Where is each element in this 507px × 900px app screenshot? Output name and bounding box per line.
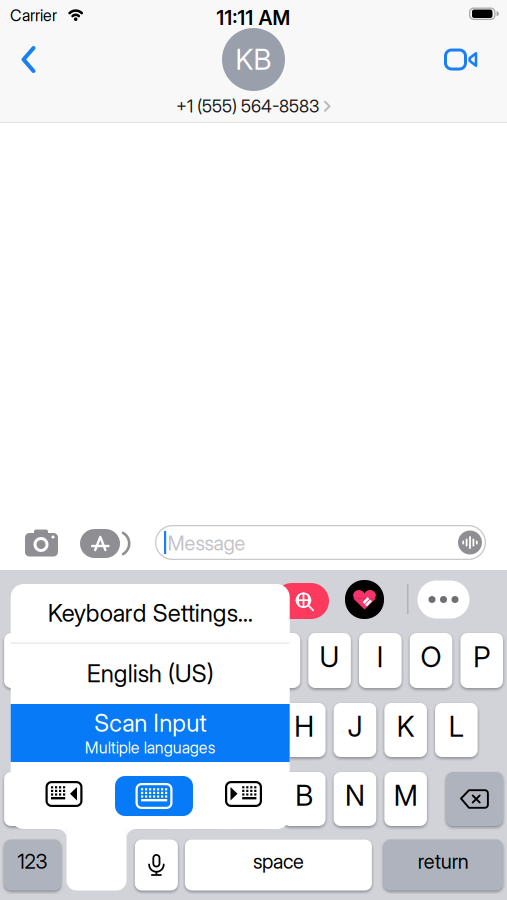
button[interactable]: R [156,633,199,688]
button[interactable]: X [131,772,173,826]
button[interactable]: I [359,633,402,688]
button[interactable]: U [308,633,351,688]
staticText: Carrier [10,6,57,25]
button[interactable]: E [105,633,148,688]
button[interactable]: L [435,703,478,757]
button[interactable]: C [182,772,224,826]
button[interactable]: Camera [25,529,59,557]
staticText: X [143,779,161,812]
staticText: Keyboard Settings... [48,599,253,627]
button[interactable]: English (US) [11,643,290,704]
staticText: N [345,779,365,812]
button[interactable]: Scan Input [11,704,290,762]
staticText: return [418,850,469,873]
button[interactable]: G [232,703,275,757]
button[interactable]: F [182,703,224,757]
staticText: V [245,779,263,812]
staticText: Q [15,640,36,673]
staticText: D [143,710,162,743]
staticText: R [168,640,186,673]
button[interactable]: Message text field [155,525,486,560]
button[interactable]: H [283,703,325,757]
button[interactable]: Dictation [135,839,178,890]
staticText: S [93,710,110,743]
staticText: I [377,640,384,673]
staticText: +1 (555) 564-8583 [176,96,319,116]
button[interactable]: J [334,703,376,757]
button[interactable]: Z [80,772,123,826]
button[interactable]: More apps [417,580,469,618]
button[interactable]: T [207,633,249,688]
staticText: space [253,850,304,873]
staticText: M [394,779,418,812]
staticText: B [295,779,313,812]
button[interactable]: Keyboard Settings... [11,584,290,642]
button[interactable]: B [283,772,326,826]
staticText: K [397,710,415,743]
button[interactable]: iMessage apps [80,529,131,558]
button[interactable]: S [80,703,123,757]
button[interactable]: space [185,839,372,890]
button[interactable]: Standard keyboard [115,776,193,816]
button[interactable]: O [410,633,452,688]
button[interactable]: V [232,772,275,826]
staticText: U [320,640,340,673]
button[interactable]: Q [4,633,47,688]
button[interactable]: 123 [4,839,61,890]
staticText: H [294,710,314,743]
staticText: Scan Input [94,709,206,737]
staticText: P [473,640,490,673]
button[interactable]: Contact KB [222,28,285,91]
staticText: Y [270,640,288,673]
button[interactable]: Back [21,46,39,74]
staticText: Multiple languages [85,738,216,757]
button[interactable]: W [55,633,97,688]
staticText: O [420,640,441,673]
staticText: F [195,710,211,743]
button[interactable]: Dock keyboard left [45,781,82,807]
button[interactable]: Search app [274,583,507,900]
button[interactable]: Digital Touch [345,580,384,619]
staticText: Message [167,531,245,555]
staticText: T [220,640,237,673]
button[interactable]: N [334,772,376,826]
button[interactable]: D [131,703,173,757]
button[interactable]: Shift [4,772,61,826]
button[interactable]: Delete [446,772,503,826]
button[interactable]: return [383,839,503,890]
button[interactable]: Y [258,633,300,688]
button[interactable]: P [460,633,503,688]
button[interactable]: A [29,703,72,757]
staticText: 123 [18,850,48,873]
staticText: E [119,640,135,673]
staticText: 11:11 AM [216,6,290,30]
staticText: J [347,710,362,743]
staticText: L [449,710,464,743]
button[interactable]: K [384,703,427,757]
staticText: W [63,640,90,673]
button[interactable]: Dock keyboard right [225,781,262,807]
button[interactable]: +1 (555) 564-8583 [176,96,331,116]
staticText: KB [235,43,271,76]
button[interactable]: FaceTime [444,47,467,69]
staticText: English (US) [87,659,214,688]
button[interactable]: M [384,772,427,826]
